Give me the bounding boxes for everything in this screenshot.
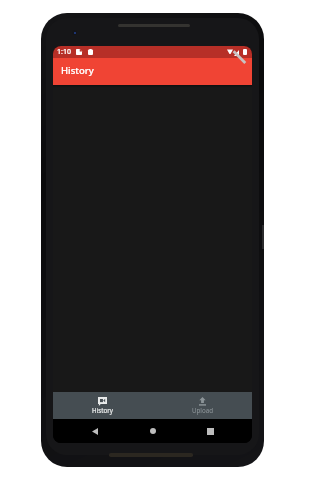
button[interactable]: History [53, 392, 152, 419]
button[interactable]: Home [143, 422, 163, 440]
staticText: 1:10 [57, 47, 71, 57]
staticText: History [92, 406, 113, 414]
staticText: Upload [192, 406, 213, 414]
staticText: History [61, 64, 94, 77]
button[interactable]: Back [85, 422, 105, 440]
button[interactable]: Upload [152, 392, 252, 419]
button[interactable]: Recent apps [200, 422, 220, 440]
